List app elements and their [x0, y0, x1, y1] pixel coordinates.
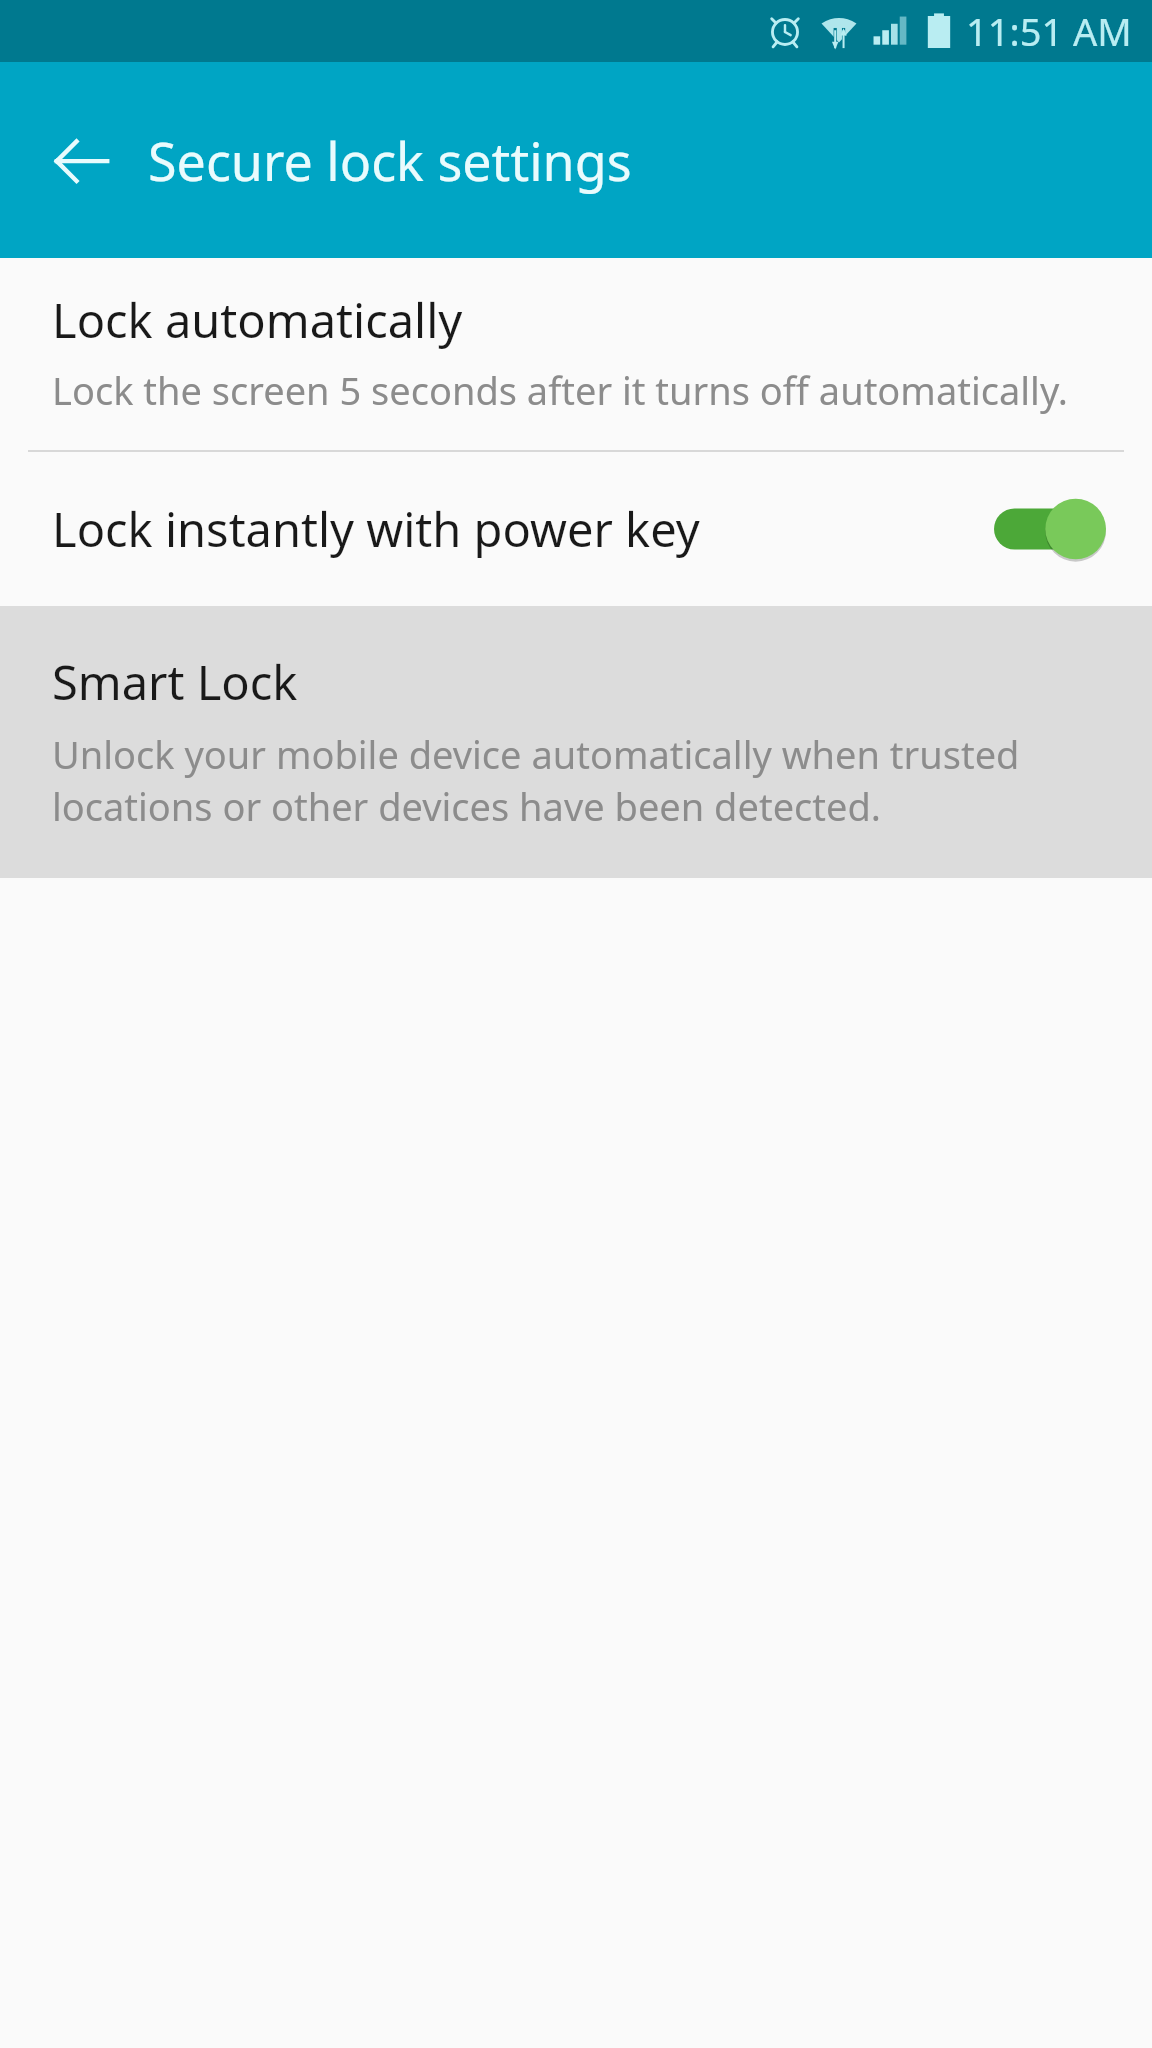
staticText: 11:51 AM [966, 5, 1132, 57]
button[interactable]: Lock automatically [0, 258, 1152, 450]
staticText: Smart Lock [52, 650, 298, 714]
staticText: Lock instantly with power key [52, 497, 700, 561]
button[interactable]: Back [34, 114, 126, 206]
staticText: Secure lock settings [148, 125, 632, 196]
button[interactable]: Lock instantly with power key [0, 452, 1152, 606]
button[interactable]: Smart Lock [0, 606, 1152, 878]
staticText: Lock automatically [52, 288, 463, 352]
staticText: Lock the screen 5 seconds after it turns… [52, 364, 1068, 416]
button[interactable]: Lock instantly with power key toggle [994, 496, 1106, 562]
staticText: Unlock your mobile device automatically … [52, 728, 1100, 832]
